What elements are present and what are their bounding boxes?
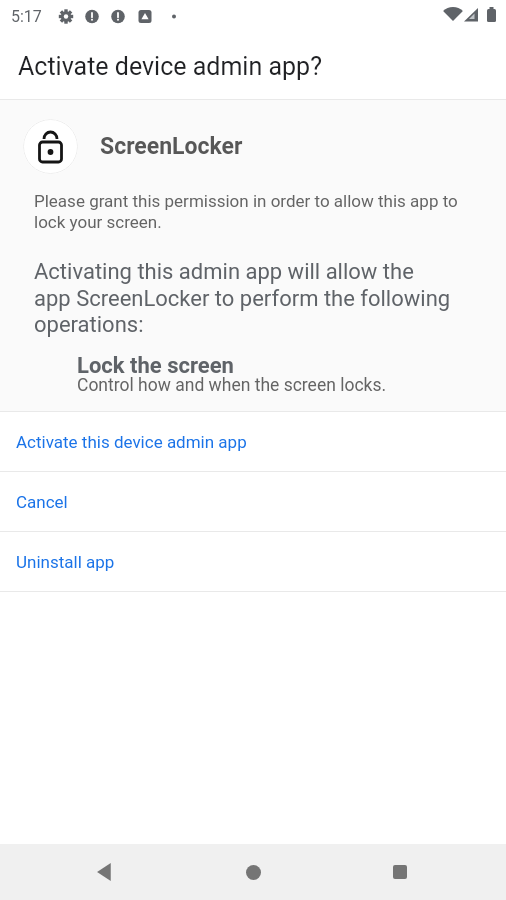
button[interactable] bbox=[380, 852, 420, 892]
staticText: 5:17 bbox=[11, 7, 42, 26]
staticText: Lock the screen bbox=[77, 353, 234, 379]
staticText: Activating this admin app will allow the… bbox=[34, 259, 451, 337]
button[interactable]: Activate this device admin app bbox=[0, 412, 506, 471]
staticText: Uninstall app bbox=[16, 552, 115, 572]
button[interactable]: Cancel bbox=[0, 472, 506, 531]
staticText: Activate this device admin app bbox=[16, 432, 247, 452]
button[interactable]: Uninstall app bbox=[0, 532, 506, 591]
staticText: Please grant this permission in order to… bbox=[34, 191, 458, 232]
staticText: Activate device admin app? bbox=[18, 52, 322, 81]
staticText: ScreenLocker bbox=[100, 133, 243, 160]
staticText: Cancel bbox=[16, 492, 68, 512]
button[interactable] bbox=[233, 852, 273, 892]
staticText: Control how and when the screen locks. bbox=[77, 375, 387, 396]
button[interactable] bbox=[85, 852, 125, 892]
